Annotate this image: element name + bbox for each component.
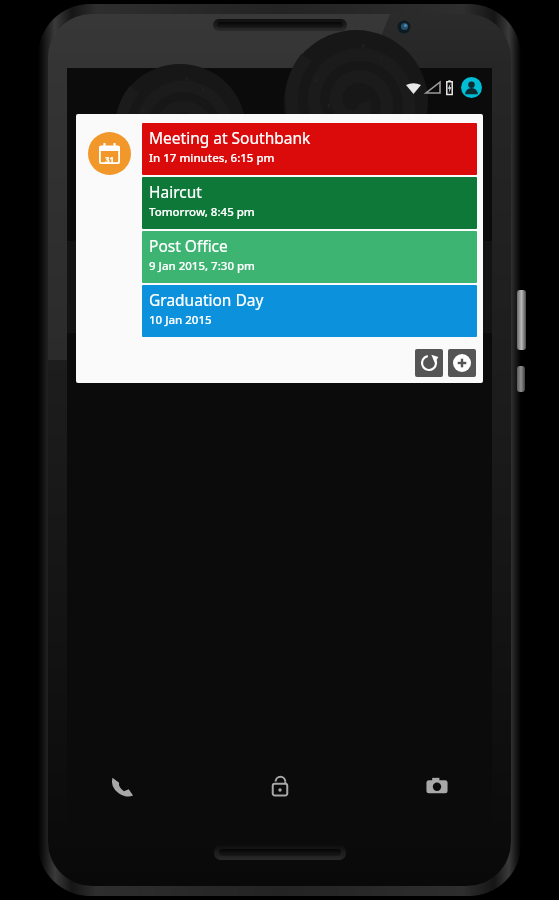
button[interactable]: Unlock — [177, 748, 382, 824]
button[interactable]: Meeting at Southbank — [142, 123, 477, 175]
button[interactable]: Phone — [67, 748, 177, 824]
staticText: Meeting at Southbank — [149, 127, 311, 148]
staticText: 9 Jan 2015, 7:30 pm — [149, 258, 255, 274]
button[interactable]: Post Office — [142, 231, 477, 283]
staticText: In 17 minutes, 6:15 pm — [149, 150, 275, 166]
staticText: 31 — [105, 154, 115, 165]
staticText: Graduation Day — [149, 289, 264, 310]
button[interactable]: Camera — [382, 748, 492, 824]
button[interactable]: Calendar — [88, 132, 131, 175]
button[interactable]: Refresh — [415, 349, 443, 377]
staticText: Tomorrow, 8:45 pm — [149, 204, 255, 220]
button[interactable]: Calendar — [76, 114, 483, 383]
button[interactable]: Haircut — [142, 177, 477, 229]
staticText: Post Office — [149, 235, 228, 256]
staticText: Haircut — [149, 181, 202, 202]
staticText: 10 Jan 2015 — [149, 312, 212, 328]
button[interactable]: Graduation Day — [142, 285, 477, 337]
button[interactable]: Add event — [448, 349, 476, 377]
